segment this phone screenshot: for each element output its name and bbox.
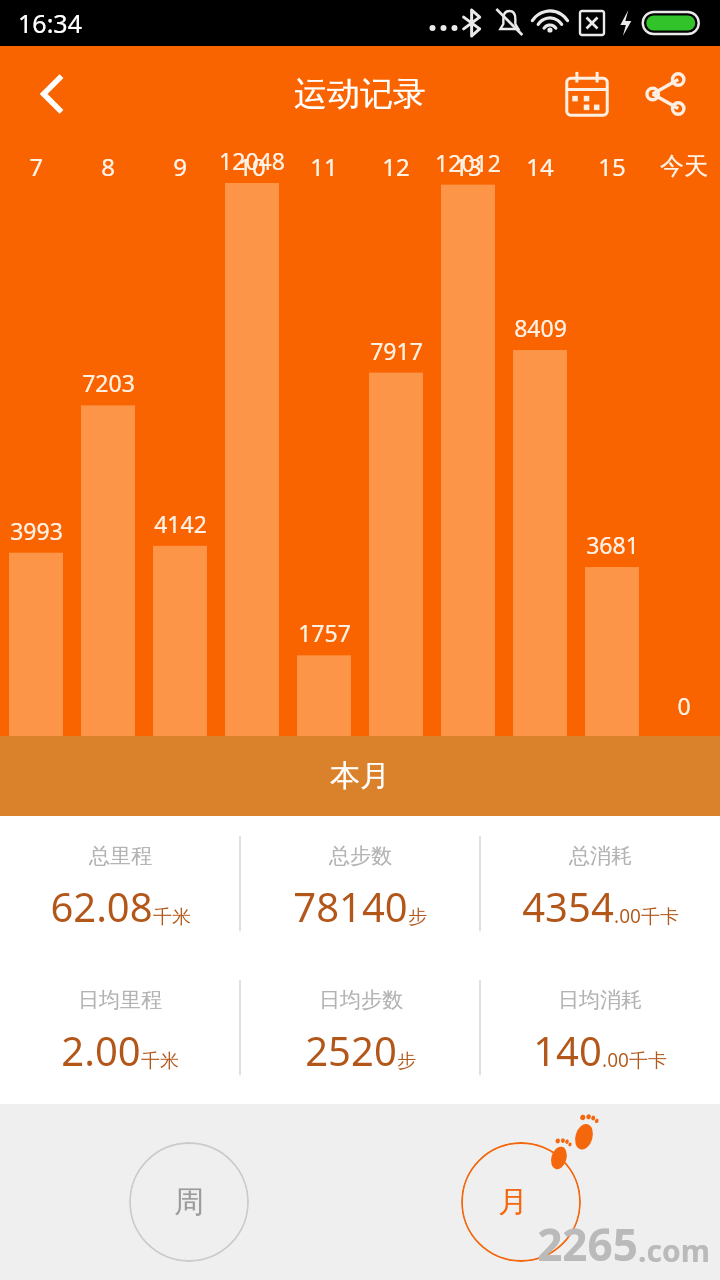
staticText: 2.00 bbox=[61, 1023, 141, 1077]
staticText: 7203 bbox=[82, 367, 135, 398]
staticText: .com bbox=[638, 1230, 710, 1271]
button[interactable]: 今天 bbox=[648, 146, 720, 186]
button[interactable]: 日均里程 bbox=[0, 960, 240, 1104]
staticText: 步 bbox=[408, 905, 427, 929]
staticText: 16:34 bbox=[18, 6, 82, 40]
staticText: 15 bbox=[598, 150, 626, 183]
button[interactable]: 总消耗 bbox=[480, 816, 720, 960]
staticText: 日均里程 bbox=[78, 987, 162, 1013]
staticText: 11 bbox=[310, 150, 338, 183]
button[interactable]: 7 bbox=[0, 146, 72, 186]
staticText: .00 bbox=[602, 1047, 629, 1073]
button[interactable]: Back bbox=[0, 46, 104, 142]
staticText: 8 bbox=[101, 150, 115, 183]
staticText: 12 bbox=[382, 150, 410, 183]
staticText: 日均步数 bbox=[319, 987, 403, 1013]
staticText: 周 bbox=[174, 1183, 204, 1221]
staticText: 千米 bbox=[141, 1049, 179, 1073]
button[interactable]: 9 bbox=[144, 146, 216, 186]
staticText: 14 bbox=[526, 150, 554, 183]
button[interactable]: 日均消耗 bbox=[480, 960, 720, 1104]
button[interactable]: 总里程 bbox=[0, 816, 240, 960]
staticText: 运动记录 bbox=[294, 73, 426, 115]
button[interactable]: 8 bbox=[72, 146, 144, 186]
staticText: 本月 bbox=[330, 757, 390, 795]
staticText: 78140 bbox=[293, 879, 408, 933]
button[interactable]: 12 bbox=[360, 146, 432, 186]
button[interactable]: 15 bbox=[576, 146, 648, 186]
staticText: 62.08 bbox=[50, 879, 153, 933]
staticText: 2265 bbox=[537, 1214, 638, 1274]
staticText: 步 bbox=[397, 1049, 416, 1073]
button[interactable]: Calendar bbox=[548, 55, 626, 133]
other: Steps bbox=[540, 1108, 630, 1198]
staticText: 9 bbox=[173, 150, 187, 183]
staticText: 4142 bbox=[154, 508, 207, 539]
button[interactable]: 13 bbox=[432, 146, 504, 186]
staticText: 12012 bbox=[435, 147, 501, 178]
staticText: 总消耗 bbox=[569, 843, 632, 869]
button[interactable]: 本月 bbox=[0, 736, 720, 816]
button[interactable]: 周 bbox=[129, 1142, 249, 1262]
staticText: 总里程 bbox=[89, 843, 152, 869]
staticText: 2520 bbox=[305, 1023, 397, 1077]
button[interactable]: 日均步数 bbox=[240, 960, 480, 1104]
staticText: 总步数 bbox=[329, 843, 392, 869]
staticText: 140 bbox=[533, 1023, 602, 1077]
staticText: 4354 bbox=[522, 879, 614, 933]
staticText: 12048 bbox=[219, 145, 285, 176]
staticText: 7 bbox=[29, 150, 43, 183]
button[interactable]: 10 bbox=[216, 146, 288, 186]
staticText: 0 bbox=[677, 690, 691, 721]
staticText: 13 bbox=[454, 150, 482, 183]
staticText: 千卡 bbox=[629, 1049, 667, 1073]
staticText: 日均消耗 bbox=[558, 987, 642, 1013]
staticText: 10 bbox=[238, 150, 266, 183]
button[interactable]: 11 bbox=[288, 146, 360, 186]
button[interactable]: 14 bbox=[504, 146, 576, 186]
staticText: 1757 bbox=[298, 617, 351, 648]
staticText: 3681 bbox=[586, 529, 639, 560]
button[interactable]: 月 bbox=[461, 1142, 581, 1262]
staticText: .00 bbox=[614, 903, 641, 929]
staticText: 7917 bbox=[370, 335, 423, 366]
staticText: 月 bbox=[498, 1183, 528, 1221]
button[interactable]: 总步数 bbox=[240, 816, 480, 960]
button[interactable]: Share bbox=[626, 55, 704, 133]
staticText: 千米 bbox=[153, 905, 191, 929]
staticText: 3993 bbox=[10, 515, 63, 546]
staticText: 8409 bbox=[514, 312, 567, 343]
staticText: 今天 bbox=[660, 151, 708, 181]
staticText: 千卡 bbox=[641, 905, 679, 929]
